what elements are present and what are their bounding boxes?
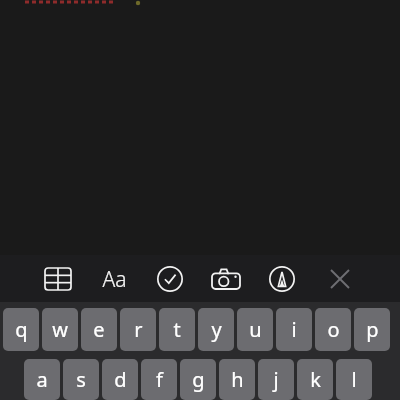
- button[interactable]: g: [180, 359, 216, 400]
- button[interactable]: t: [159, 308, 195, 351]
- button[interactable]: Text format: [96, 257, 132, 301]
- button[interactable]: y: [198, 308, 234, 351]
- staticText: j: [273, 366, 279, 393]
- staticText: f: [156, 366, 163, 393]
- staticText: g: [192, 366, 205, 393]
- button[interactable]: Table: [40, 257, 76, 301]
- staticText: p: [366, 316, 379, 343]
- staticText: q: [15, 316, 28, 343]
- button[interactable]: w: [42, 308, 78, 351]
- staticText: i: [291, 316, 297, 343]
- staticText: o: [327, 316, 340, 343]
- button[interactable]: k: [297, 359, 333, 400]
- staticText: t: [173, 316, 181, 343]
- button[interactable]: r: [120, 308, 156, 351]
- button[interactable]: Camera: [208, 257, 244, 301]
- button[interactable]: i: [276, 308, 312, 351]
- button[interactable]: f: [141, 359, 177, 400]
- staticText: Aa: [102, 265, 127, 294]
- button[interactable]: Checklist: [152, 257, 188, 301]
- button[interactable]: q: [3, 308, 39, 351]
- button[interactable]: Markup: [264, 257, 300, 301]
- button[interactable]: d: [102, 359, 138, 400]
- staticText: y: [211, 316, 222, 343]
- staticText: s: [76, 366, 86, 393]
- staticText: d: [114, 366, 127, 393]
- staticText: k: [310, 366, 321, 393]
- staticText: w: [52, 316, 68, 343]
- button[interactable]: h: [219, 359, 255, 400]
- staticText: h: [231, 366, 244, 393]
- button[interactable]: e: [81, 308, 117, 351]
- button[interactable]: j: [258, 359, 294, 400]
- button[interactable]: Close keyboard: [322, 257, 358, 301]
- button[interactable]: o: [315, 308, 351, 351]
- staticText: u: [249, 316, 262, 343]
- button[interactable]: u: [237, 308, 273, 351]
- button[interactable]: p: [354, 308, 390, 351]
- button[interactable]: a: [24, 359, 60, 400]
- staticText: l: [351, 366, 357, 393]
- button[interactable]: s: [63, 359, 99, 400]
- staticText: a: [36, 366, 48, 393]
- button[interactable]: l: [336, 359, 372, 400]
- staticText: e: [93, 316, 105, 343]
- staticText: r: [134, 316, 143, 343]
